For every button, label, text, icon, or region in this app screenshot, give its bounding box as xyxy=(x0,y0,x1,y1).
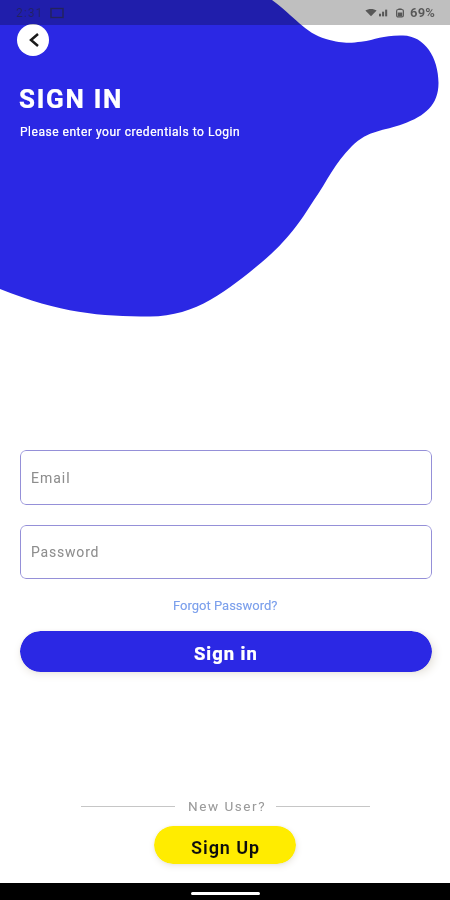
staticText: Sign Up xyxy=(191,837,260,858)
button[interactable]: Sign Up xyxy=(154,826,296,864)
button[interactable]: Back xyxy=(17,24,49,56)
staticText: Please enter your credentials to Login xyxy=(20,125,241,139)
staticText: 2:31 xyxy=(16,6,44,20)
staticText: Email xyxy=(31,470,71,486)
staticText: Password xyxy=(31,544,100,560)
button[interactable]: Sign in xyxy=(20,631,432,672)
staticText: Sign in xyxy=(194,643,258,665)
button[interactable]: Email xyxy=(20,450,432,505)
staticText: New User? xyxy=(188,798,267,814)
button[interactable]: Forgot Password? xyxy=(171,596,280,615)
staticText: 69% xyxy=(410,5,436,20)
button[interactable]: Password xyxy=(20,525,432,579)
staticText: SIGN IN xyxy=(19,84,123,114)
